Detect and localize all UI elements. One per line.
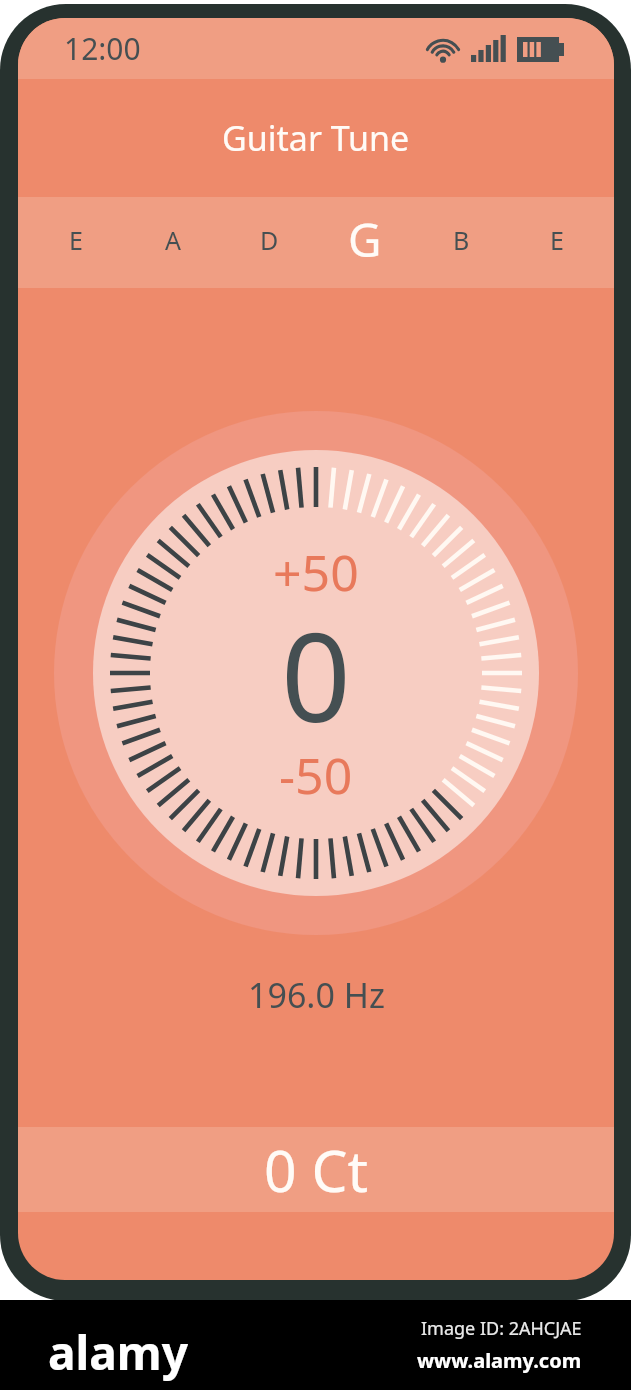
staticText: +50 <box>273 538 359 606</box>
staticText: B <box>453 223 470 257</box>
button[interactable]: D <box>221 197 317 288</box>
staticText: Guitar Tune <box>222 115 410 161</box>
other: Battery <box>517 37 564 62</box>
button[interactable]: G <box>317 197 413 288</box>
staticText: 0 Ct <box>264 1131 369 1209</box>
button[interactable]: E <box>27 197 124 288</box>
staticText: G <box>348 208 382 271</box>
button[interactable]: 0 Ct <box>18 1127 614 1212</box>
staticText: -50 <box>279 741 353 809</box>
button[interactable]: B <box>413 197 509 288</box>
staticText: alamy <box>48 1321 188 1384</box>
staticText: A <box>165 223 181 257</box>
button[interactable]: Guitar Tune <box>18 79 614 197</box>
staticText: E <box>550 223 564 257</box>
other: Mobile signal <box>471 35 508 62</box>
button[interactable]: E <box>509 197 605 288</box>
other: Tuning dial, 0 cents <box>55 412 577 934</box>
staticText: 196.0 Hz <box>248 972 385 1018</box>
staticText: E <box>69 223 83 257</box>
staticText: 12:00 <box>64 28 141 69</box>
staticText: www.alamy.com <box>417 1347 582 1374</box>
staticText: D <box>260 223 279 257</box>
button[interactable]: A <box>124 197 221 288</box>
staticText: 0 <box>281 592 351 758</box>
staticText: Image ID: 2AHCJAE <box>421 1316 582 1341</box>
other: Wi-Fi <box>424 35 462 62</box>
